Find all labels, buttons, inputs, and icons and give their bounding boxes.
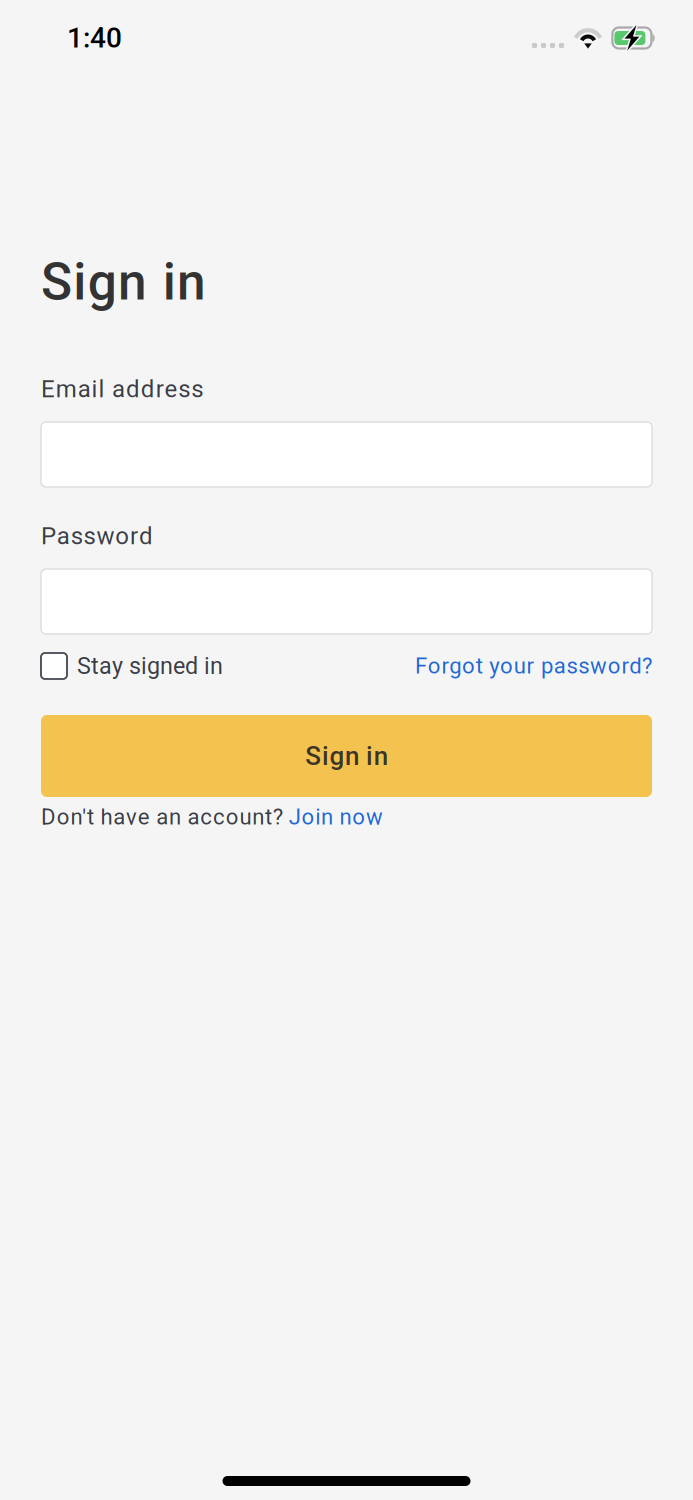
button[interactable]: Sign in xyxy=(41,715,652,797)
staticText: 1:40 xyxy=(67,22,122,54)
staticText: Password xyxy=(41,522,153,550)
button[interactable]: Stay signed in xyxy=(41,652,223,680)
staticText: Join now xyxy=(289,804,383,830)
staticText: Email address xyxy=(41,375,203,403)
button[interactable]: Join now xyxy=(289,804,383,830)
staticText: Stay signed in xyxy=(77,652,223,680)
staticText: Sign in xyxy=(305,741,388,771)
button[interactable] xyxy=(41,569,652,634)
staticText: Don't have an account? xyxy=(41,804,283,830)
staticText: Sign in xyxy=(41,252,206,312)
button[interactable]: Forgot your password? xyxy=(415,653,652,679)
button[interactable] xyxy=(41,422,652,487)
staticText: Forgot your password? xyxy=(415,653,652,679)
